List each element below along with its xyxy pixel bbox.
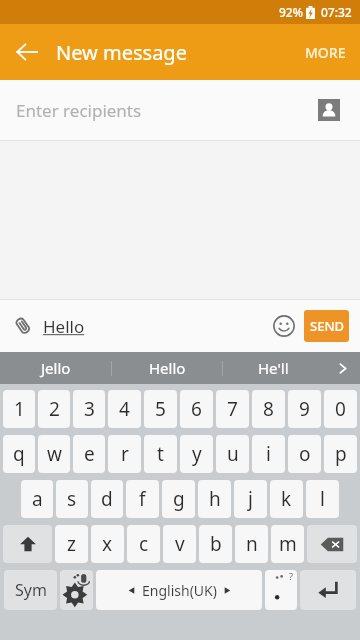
button[interactable]: More suggestions (324, 352, 360, 384)
staticText: Hello (149, 358, 186, 378)
staticText: New message (56, 39, 187, 66)
staticText: e (84, 441, 95, 467)
staticText: c (139, 531, 149, 557)
staticText: 3 (84, 396, 95, 422)
staticText: x (102, 531, 113, 557)
button[interactable]: Jello (0, 352, 111, 384)
staticText: Enter recipients (16, 99, 142, 122)
staticText: 8 (263, 396, 274, 422)
button[interactable]: r (108, 435, 141, 473)
button[interactable]: y (180, 435, 213, 473)
staticText: w (47, 441, 62, 467)
staticText: 1 (14, 396, 25, 422)
staticText: ? (289, 570, 293, 582)
staticText: 9 (299, 396, 310, 422)
staticText: He'll (258, 358, 289, 378)
button[interactable]: 0 (324, 390, 357, 428)
staticText: q (13, 441, 25, 467)
staticText: z (67, 531, 76, 557)
button[interactable]: h (198, 480, 231, 518)
staticText: r (121, 441, 129, 467)
staticText: 92% (279, 4, 303, 20)
button[interactable]: 3 (73, 390, 105, 428)
button[interactable]: 6 (180, 390, 213, 428)
staticText: Sym (15, 579, 47, 601)
button[interactable]: t (144, 435, 177, 473)
button[interactable]: 8 (252, 390, 285, 428)
staticText: 2 (49, 396, 60, 422)
staticText: 6 (191, 396, 202, 422)
button[interactable]: c (127, 525, 160, 563)
button[interactable]: Emoji (267, 309, 301, 343)
button[interactable]: f (126, 480, 159, 518)
staticText: d (101, 486, 113, 512)
button[interactable]: English(UK) (96, 570, 262, 610)
button[interactable]: Sym (4, 570, 57, 610)
staticText: j (248, 486, 253, 512)
button[interactable]: Add contact (307, 88, 351, 132)
button[interactable]: s (56, 480, 88, 518)
button[interactable]: e (73, 435, 105, 473)
staticText: v (175, 531, 185, 557)
button[interactable]: j (234, 480, 267, 518)
staticText: 0 (335, 396, 346, 422)
button[interactable]: g (162, 480, 195, 518)
staticText: g (173, 486, 185, 512)
staticText: i (266, 441, 271, 467)
staticText: y (192, 441, 202, 467)
staticText: MORE (305, 43, 346, 62)
button[interactable]: MORE (291, 24, 360, 80)
button[interactable]: o (288, 435, 321, 473)
button[interactable]: Shift (3, 525, 52, 563)
staticText: English(UK) (142, 581, 217, 600)
button[interactable]: i (252, 435, 285, 473)
staticText: SEND (310, 317, 344, 335)
button[interactable]: Back (3, 28, 51, 76)
staticText: k (281, 486, 292, 512)
button[interactable]: x (91, 525, 124, 563)
button[interactable]: 9 (288, 390, 321, 428)
button[interactable]: 4 (108, 390, 141, 428)
button[interactable]: Keyboard settings (60, 570, 93, 610)
button[interactable]: 5 (144, 390, 177, 428)
staticText: 5 (155, 396, 166, 422)
staticText: u (227, 441, 239, 467)
button[interactable]: m (271, 525, 304, 563)
button[interactable]: 7 (216, 390, 249, 428)
staticText: p (335, 441, 347, 467)
button[interactable]: b (199, 525, 232, 563)
staticText: o (299, 441, 311, 467)
button[interactable]: v (163, 525, 196, 563)
staticText: l (320, 486, 325, 512)
button[interactable]: q (3, 435, 35, 473)
staticText: 4 (119, 396, 130, 422)
button[interactable]: n (235, 525, 268, 563)
button[interactable]: p (324, 435, 357, 473)
button[interactable]: Backspace (307, 525, 357, 563)
staticText: a (32, 486, 43, 512)
button[interactable]: He'll (223, 352, 324, 384)
staticText: n (246, 531, 258, 557)
button[interactable]: Period (265, 570, 297, 610)
button[interactable]: 2 (38, 390, 70, 428)
staticText: Jello (41, 358, 71, 378)
button[interactable]: d (91, 480, 123, 518)
staticText: t (157, 441, 164, 467)
button[interactable]: SEND (304, 310, 349, 342)
staticText: m (279, 531, 297, 557)
button[interactable]: 1 (3, 390, 35, 428)
button[interactable]: z (55, 525, 88, 563)
button[interactable]: l (306, 480, 339, 518)
staticText: f (139, 486, 146, 512)
button[interactable]: u (216, 435, 249, 473)
staticText: Hello (43, 315, 85, 338)
button[interactable]: Enter (300, 570, 356, 610)
button[interactable]: w (38, 435, 70, 473)
button[interactable]: a (21, 480, 53, 518)
button[interactable]: Hello (112, 352, 222, 384)
staticText: h (209, 486, 221, 512)
button[interactable]: k (270, 480, 303, 518)
staticText: 07:32 (321, 4, 352, 20)
button[interactable]: Attach (2, 305, 44, 347)
staticText: s (67, 486, 77, 512)
